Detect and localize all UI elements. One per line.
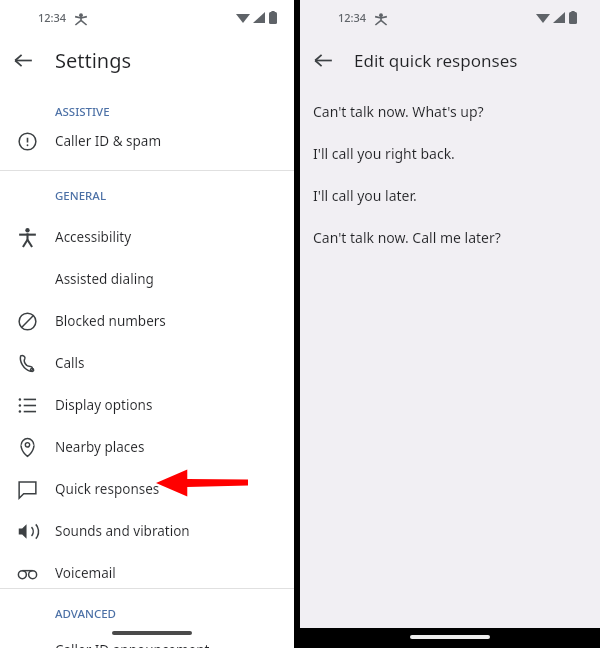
staticText: Assisted dialing xyxy=(55,270,154,288)
staticText: Calls xyxy=(55,354,85,372)
staticText: GENERAL xyxy=(55,188,107,204)
button[interactable]: Back xyxy=(0,40,46,80)
button[interactable]: Can't talk now. Call me later? xyxy=(300,216,600,258)
staticText: Settings xyxy=(55,47,132,74)
button[interactable]: Calls xyxy=(0,344,294,382)
staticText: ASSISTIVE xyxy=(55,104,110,120)
staticText: I'll call you right back. xyxy=(313,144,455,163)
button[interactable]: I'll call you later. xyxy=(300,174,600,216)
staticText: Sounds and vibration xyxy=(55,522,190,540)
button[interactable]: I'll call you right back. xyxy=(300,132,600,174)
staticText: Caller ID announcement xyxy=(55,641,210,648)
staticText: Quick responses xyxy=(55,480,160,498)
button[interactable]: Back xyxy=(300,40,346,80)
button[interactable]: Assisted dialing xyxy=(0,260,294,298)
button[interactable]: Display options xyxy=(0,386,294,424)
button[interactable]: Caller ID & spam xyxy=(0,122,294,160)
staticText: ADVANCED xyxy=(55,606,117,622)
button[interactable]: Nearby places xyxy=(0,428,294,466)
staticText: Can't talk now. What's up? xyxy=(313,102,484,121)
button[interactable]: Can't talk now. What's up? xyxy=(300,90,600,132)
button[interactable]: Caller ID announcement xyxy=(0,631,294,648)
staticText: I'll call you later. xyxy=(313,186,417,205)
staticText: Caller ID & spam xyxy=(55,132,162,150)
staticText: Can't talk now. Call me later? xyxy=(313,228,501,247)
button[interactable]: Voicemail xyxy=(0,554,294,592)
staticText: 12:34 xyxy=(338,10,367,25)
staticText: 12:34 xyxy=(38,10,67,25)
button[interactable]: Blocked numbers xyxy=(0,302,294,340)
staticText: Nearby places xyxy=(55,438,145,456)
staticText: Edit quick responses xyxy=(354,49,518,72)
staticText: Blocked numbers xyxy=(55,312,166,330)
button[interactable]: Accessibility xyxy=(0,218,294,256)
staticText: Accessibility xyxy=(55,228,132,246)
staticText: Voicemail xyxy=(55,564,116,582)
button[interactable]: Sounds and vibration xyxy=(0,512,294,550)
staticText: Display options xyxy=(55,396,153,414)
button[interactable]: Quick responses xyxy=(0,470,294,508)
